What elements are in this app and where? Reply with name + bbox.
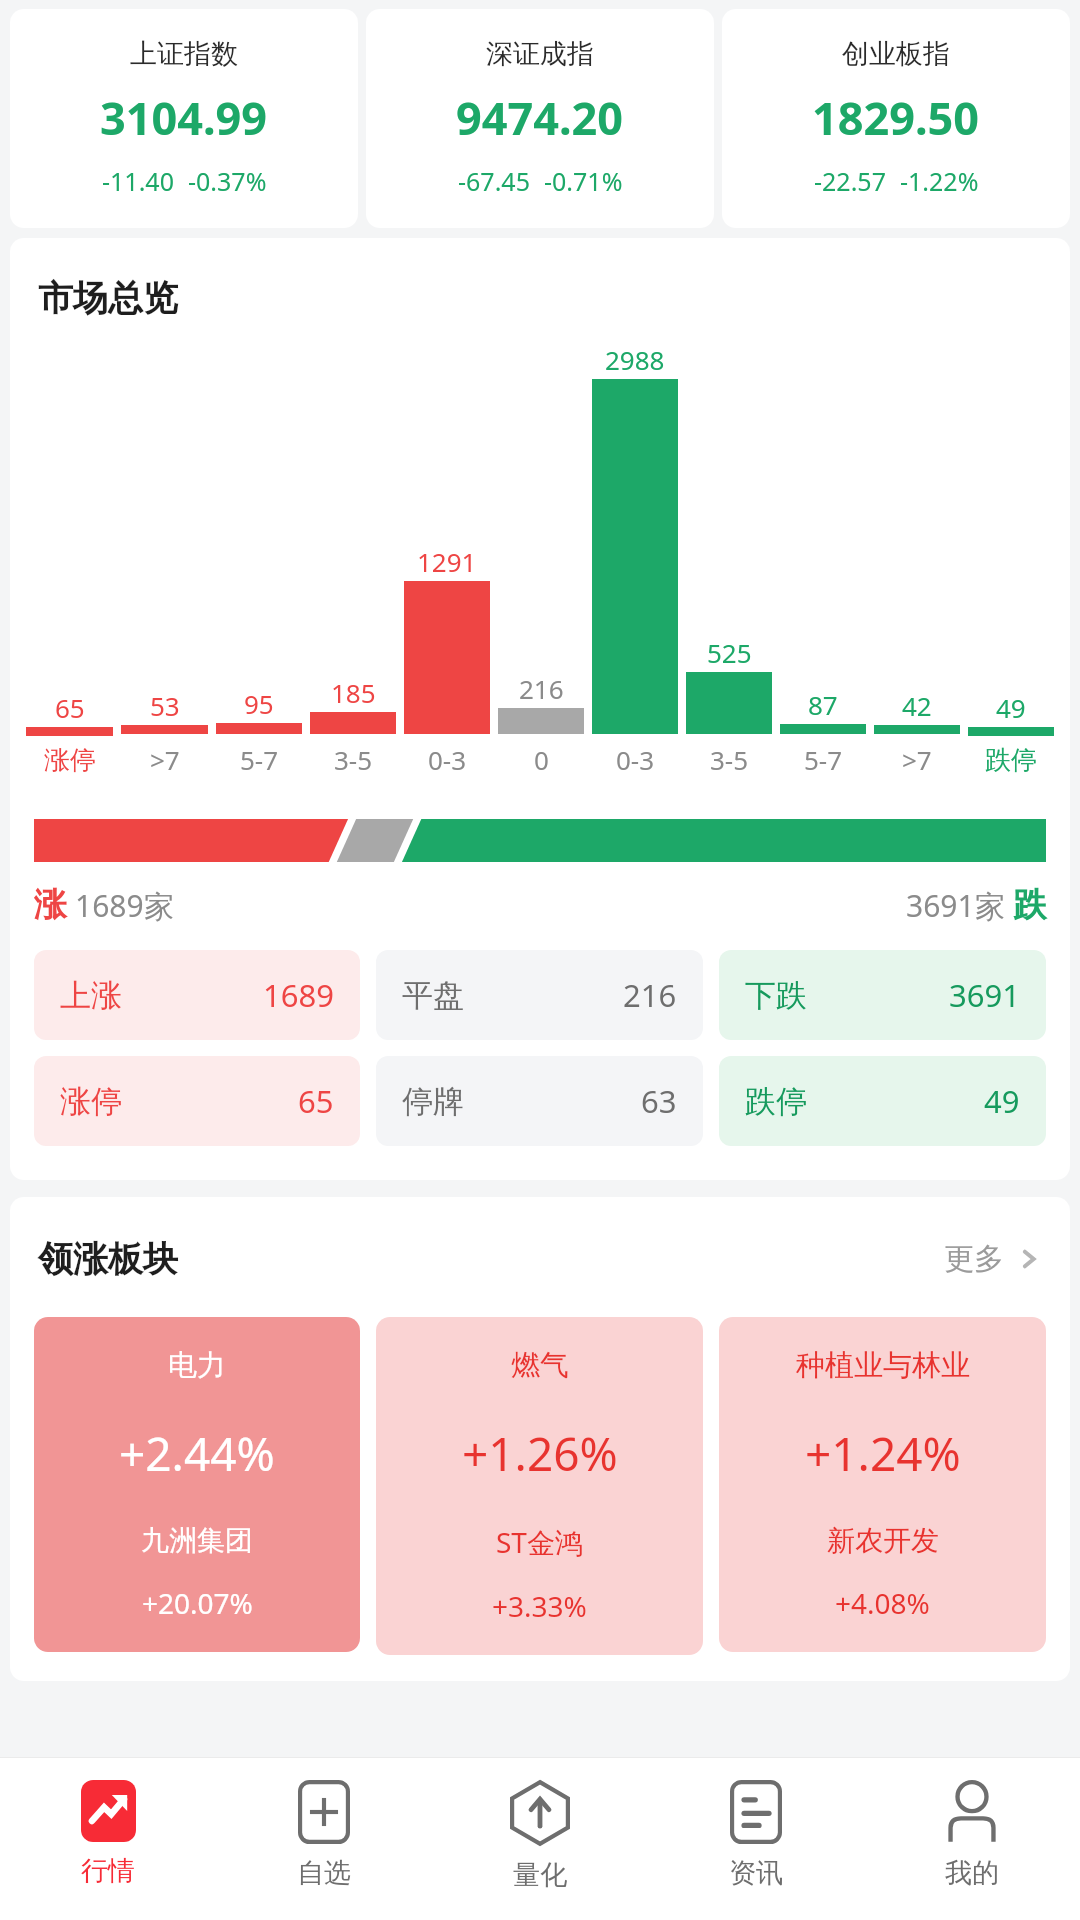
staticText: >7 <box>902 742 932 777</box>
staticText: 上涨 <box>60 976 122 1015</box>
staticText: 1689家 <box>75 885 174 926</box>
staticText: 3-5 <box>710 742 749 777</box>
staticText: 0-3 <box>428 742 467 777</box>
staticText: 3691家 <box>906 885 1005 926</box>
staticText: +20.07% <box>142 1584 253 1622</box>
staticText: 行情 <box>81 1854 135 1888</box>
staticText: +1.26% <box>462 1422 618 1485</box>
staticText: 我的 <box>945 1856 999 1890</box>
staticText: +2.44% <box>119 1422 275 1485</box>
staticText: 49 <box>996 690 1026 725</box>
staticText: 1829.50 <box>812 87 980 148</box>
staticText: 停牌 <box>402 1082 464 1121</box>
staticText: 种植业与林业 <box>796 1347 970 1384</box>
button[interactable]: 跌停 <box>719 1056 1046 1146</box>
staticText: ST金鸿 <box>496 1523 583 1561</box>
button[interactable]: 停牌 <box>376 1056 703 1146</box>
staticText: 3-5 <box>334 742 373 777</box>
button[interactable]: 燃气 <box>376 1317 703 1655</box>
staticText: 0-3 <box>616 742 655 777</box>
staticText: 525 <box>707 635 752 670</box>
staticText: -0.71% <box>544 164 623 198</box>
staticText: 平盘 <box>402 976 464 1015</box>
staticText: 65 <box>55 690 85 725</box>
staticText: 87 <box>808 687 838 722</box>
staticText: 1291 <box>417 544 477 579</box>
staticText: 九洲集团 <box>141 1523 253 1558</box>
staticText: -0.37% <box>188 164 267 198</box>
staticText: 63 <box>641 1080 677 1122</box>
staticText: 95 <box>244 686 274 721</box>
button[interactable]: 行情 <box>0 1758 216 1920</box>
staticText: -67.45 <box>458 164 530 198</box>
button[interactable]: 我的 <box>864 1758 1080 1920</box>
button[interactable]: 上证指数 <box>10 9 358 228</box>
staticText: 创业板指 <box>842 37 950 71</box>
button[interactable]: 量化 <box>432 1758 648 1920</box>
staticText: 量化 <box>513 1858 567 1892</box>
staticText: 涨停 <box>44 744 96 777</box>
other: 更多 <box>1016 1246 1042 1272</box>
staticText: 跌停 <box>745 1082 807 1121</box>
staticText: 53 <box>150 688 180 723</box>
button[interactable]: 自选 <box>216 1758 432 1920</box>
staticText: 1689 <box>263 974 334 1016</box>
staticText: 65 <box>298 1080 334 1122</box>
staticText: 领涨板块 <box>38 1237 178 1281</box>
staticText: 深证成指 <box>486 37 594 71</box>
staticText: 3691 <box>949 974 1020 1016</box>
button[interactable]: 创业板指 <box>722 9 1070 228</box>
staticText: 下跌 <box>745 976 807 1015</box>
button[interactable]: 涨停 <box>34 1056 360 1146</box>
button[interactable]: 电力 <box>34 1317 360 1652</box>
staticText: 更多 <box>944 1240 1004 1278</box>
staticText: 跌 <box>1013 884 1046 926</box>
staticText: 216 <box>623 974 677 1016</box>
staticText: 9474.20 <box>456 87 624 148</box>
staticText: >7 <box>150 742 180 777</box>
staticText: 新农开发 <box>827 1523 939 1558</box>
button[interactable]: 上涨 <box>34 950 360 1040</box>
button[interactable]: 种植业与林业 <box>719 1317 1046 1652</box>
staticText: -22.57 <box>814 164 886 198</box>
button[interactable]: 平盘 <box>376 950 703 1040</box>
button[interactable]: 下跌 <box>719 950 1046 1040</box>
staticText: 电力 <box>168 1347 226 1384</box>
staticText: 自选 <box>297 1856 351 1890</box>
staticText: 2988 <box>605 342 665 377</box>
staticText: -11.40 <box>102 164 174 198</box>
staticText: 上证指数 <box>130 37 238 71</box>
staticText: 42 <box>902 688 932 723</box>
staticText: 涨 <box>34 884 67 926</box>
staticText: 3104.99 <box>100 87 268 148</box>
staticText: 49 <box>984 1080 1020 1122</box>
staticText: 资讯 <box>729 1856 783 1890</box>
staticText: 216 <box>519 671 564 706</box>
staticText: 5-7 <box>804 742 843 777</box>
button[interactable]: 领涨板块 <box>10 1237 1070 1281</box>
staticText: -1.22% <box>900 164 979 198</box>
staticText: 燃气 <box>511 1347 569 1384</box>
staticText: +1.24% <box>805 1422 961 1485</box>
staticText: 市场总览 <box>38 276 178 320</box>
staticText: 0 <box>534 742 549 777</box>
staticText: 涨停 <box>60 1082 122 1121</box>
staticText: 5-7 <box>240 742 279 777</box>
button[interactable]: 深证成指 <box>366 9 714 228</box>
staticText: +3.33% <box>492 1587 587 1625</box>
staticText: +4.08% <box>835 1584 930 1622</box>
staticText: 跌停 <box>985 744 1037 777</box>
staticText: 185 <box>331 675 376 710</box>
button[interactable]: 资讯 <box>648 1758 864 1920</box>
